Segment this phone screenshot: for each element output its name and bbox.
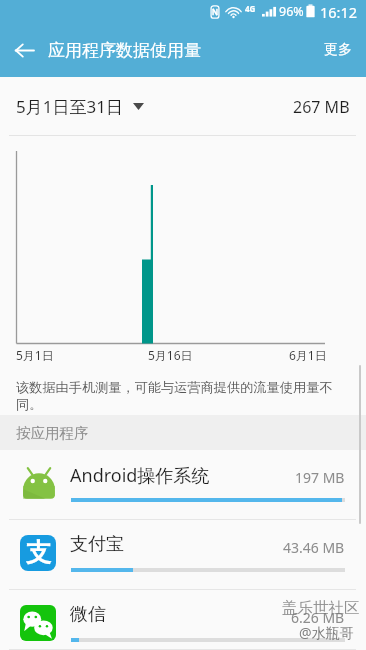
staticText: 该数据由手机测量，可能与运营商提供的流量使用量不同。: [16, 379, 341, 413]
staticText: 6月1日: [289, 347, 327, 363]
button[interactable]: 支: [0, 520, 366, 590]
staticText: 96%: [279, 3, 304, 20]
staticText: Android操作系统: [70, 463, 210, 488]
staticText: 按应用程序: [16, 424, 89, 442]
staticText: 16:12: [320, 2, 358, 22]
staticText: 4G: [245, 3, 256, 14]
staticText: 5月1日至31日: [16, 95, 123, 118]
button[interactable]: 更多: [308, 25, 366, 75]
staticText: 43.46 MB: [283, 538, 345, 557]
staticText: 应用程序数据使用量: [48, 40, 201, 61]
staticText: 5月1日: [16, 347, 54, 363]
staticText: 支: [26, 537, 51, 568]
staticText: 197 MB: [295, 468, 345, 487]
staticText: 6.26 MB: [291, 608, 345, 627]
staticText: 更多: [324, 41, 352, 59]
staticText: 267 MB: [293, 96, 350, 118]
staticText: 支付宝: [70, 533, 124, 556]
staticText: 微信: [70, 603, 106, 626]
button[interactable]: Android操作系统: [0, 450, 366, 520]
staticText: 5月16日: [148, 347, 193, 363]
staticText: @水瓶哥: [299, 623, 354, 642]
button[interactable]: 微信: [0, 590, 366, 650]
button[interactable]: 5月1日至31日: [16, 95, 144, 118]
button[interactable]: Back: [0, 23, 48, 77]
staticText: 盖乐世社区: [282, 598, 360, 618]
